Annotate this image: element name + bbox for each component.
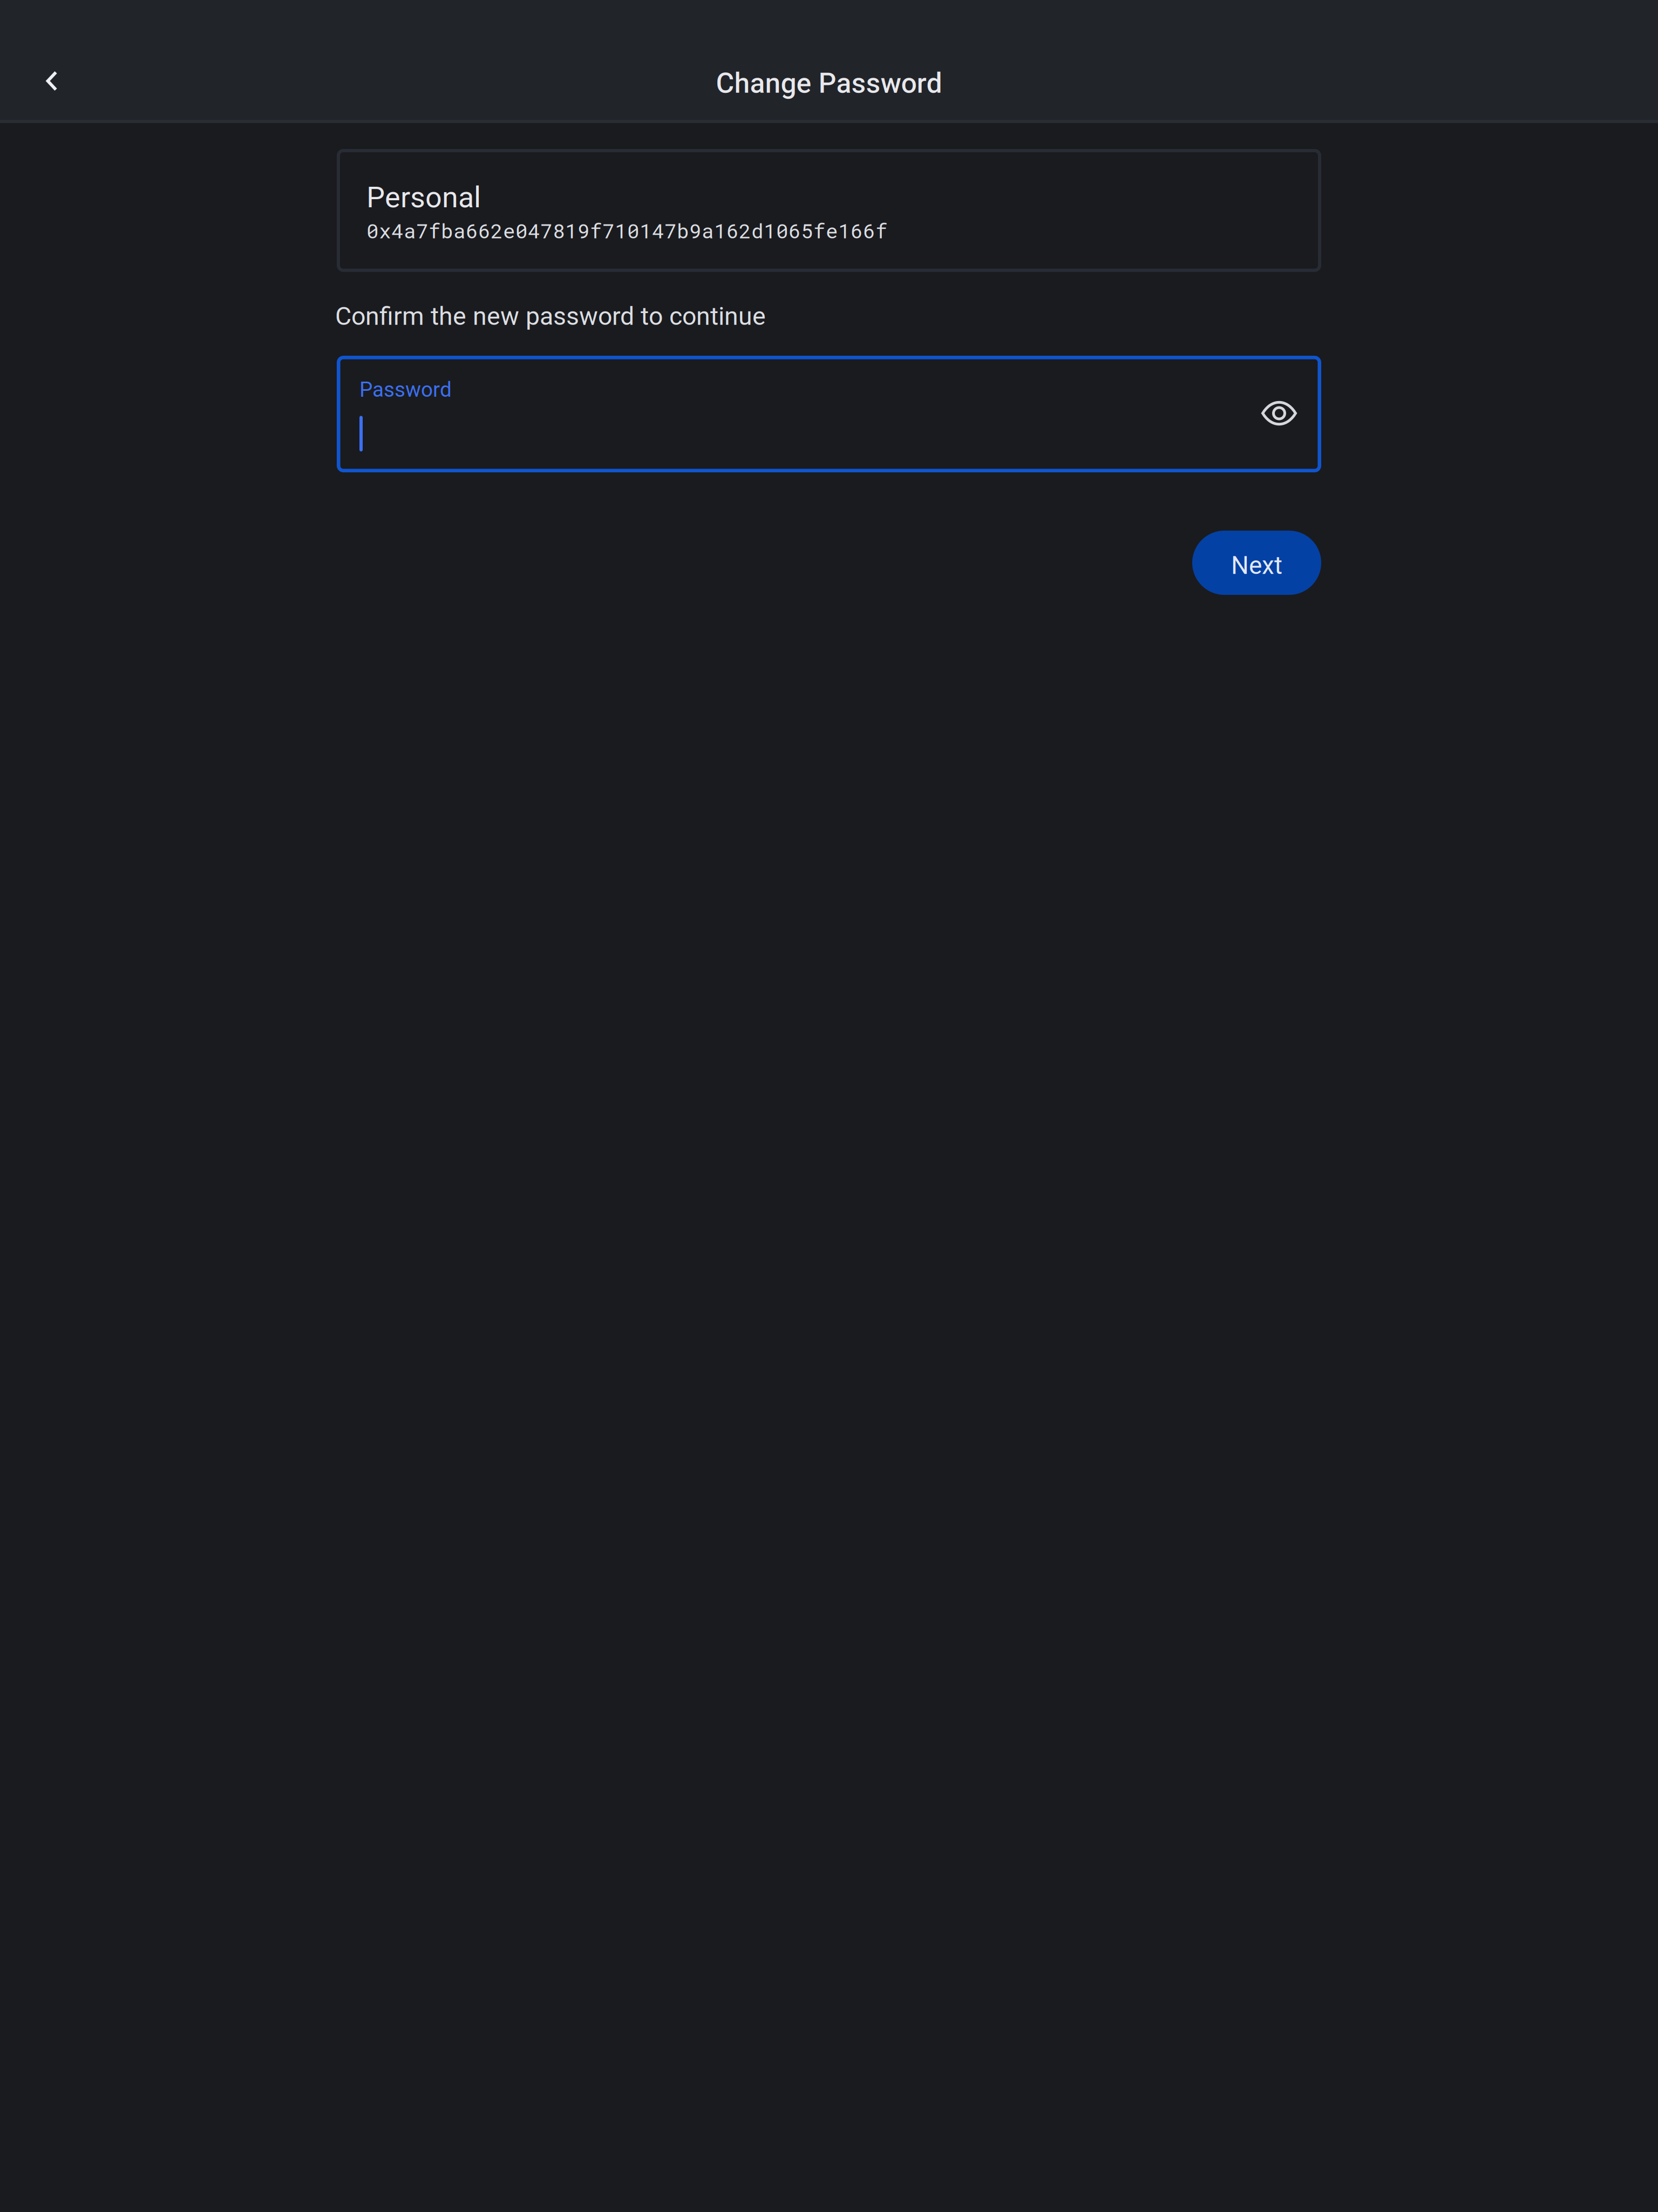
staticText: Confirm the new password to continue bbox=[335, 302, 766, 331]
button[interactable]: Show password bbox=[1248, 382, 1310, 446]
staticText: Personal bbox=[366, 180, 481, 214]
staticText: Change Password bbox=[716, 67, 942, 99]
button[interactable]: Next bbox=[1192, 531, 1321, 595]
button[interactable]: Back bbox=[19, 49, 84, 113]
staticText: 0x4a7fba662e047819f710147b9a162d1065fe16… bbox=[366, 217, 888, 244]
staticText: Password bbox=[359, 377, 452, 402]
staticText: Next bbox=[1231, 551, 1282, 580]
